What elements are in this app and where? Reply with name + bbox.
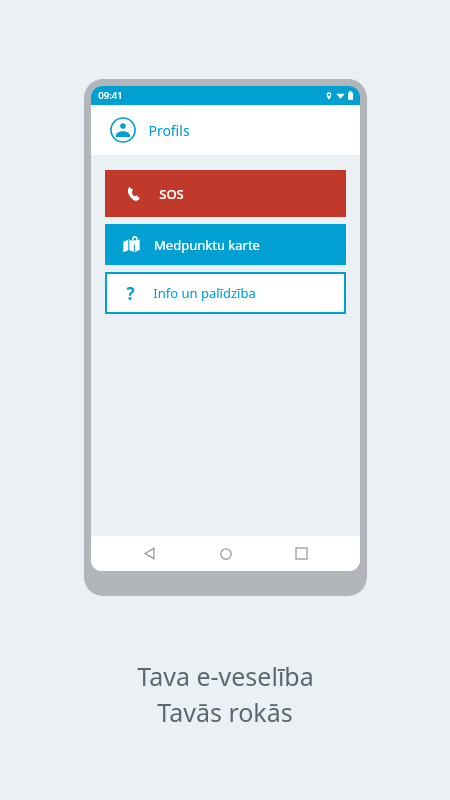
staticText: Tava e-veselība bbox=[137, 659, 314, 693]
button[interactable]: Call SOS bbox=[105, 170, 346, 217]
button[interactable]: Recents bbox=[284, 536, 319, 571]
staticText: ? bbox=[126, 282, 135, 305]
staticText: 09:41 bbox=[98, 89, 123, 102]
button[interactable]: Profils bbox=[91, 105, 360, 155]
staticText: Tavās rokās bbox=[157, 695, 293, 729]
staticText: Info un palīdzība bbox=[153, 284, 256, 302]
button[interactable]: ? bbox=[105, 272, 346, 314]
staticText: Profils bbox=[148, 121, 190, 140]
other: Map bbox=[123, 236, 140, 253]
button[interactable]: Map bbox=[105, 224, 346, 265]
staticText: Medpunktu karte bbox=[154, 236, 260, 254]
staticText: SOS bbox=[159, 185, 184, 203]
other: Call SOS bbox=[126, 186, 141, 201]
button[interactable]: Back bbox=[132, 536, 167, 571]
button[interactable]: Home bbox=[208, 536, 243, 571]
